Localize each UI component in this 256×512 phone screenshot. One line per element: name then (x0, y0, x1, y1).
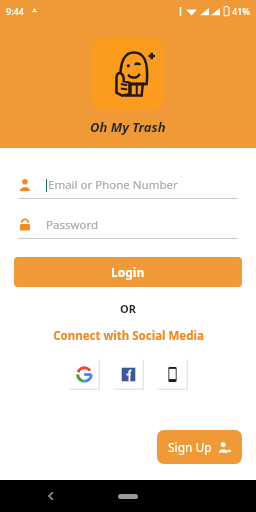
staticText: Oh My Trash (90, 118, 166, 136)
button[interactable]: Email or Phone Number (18, 172, 238, 199)
button[interactable]: Sign in with Google (68, 358, 100, 390)
staticText: Password (46, 217, 99, 233)
button[interactable]: Sign in with Facebook (112, 358, 144, 390)
staticText: Email or Phone Number (48, 177, 178, 193)
staticText: 9:44 (6, 5, 24, 17)
staticText: Sign Up (168, 439, 212, 455)
button[interactable]: Login (14, 257, 242, 287)
staticText: 41% (232, 5, 250, 17)
staticText: OR (0, 301, 256, 316)
button[interactable]: Connect with Social Media (53, 328, 204, 344)
button[interactable]: Home (108, 486, 148, 506)
button[interactable]: Back (40, 485, 62, 507)
button[interactable]: Sign Up (157, 430, 242, 464)
staticText: Login (111, 264, 145, 280)
button[interactable]: Sign in with phone number (156, 358, 188, 390)
button[interactable]: Password (18, 212, 238, 239)
